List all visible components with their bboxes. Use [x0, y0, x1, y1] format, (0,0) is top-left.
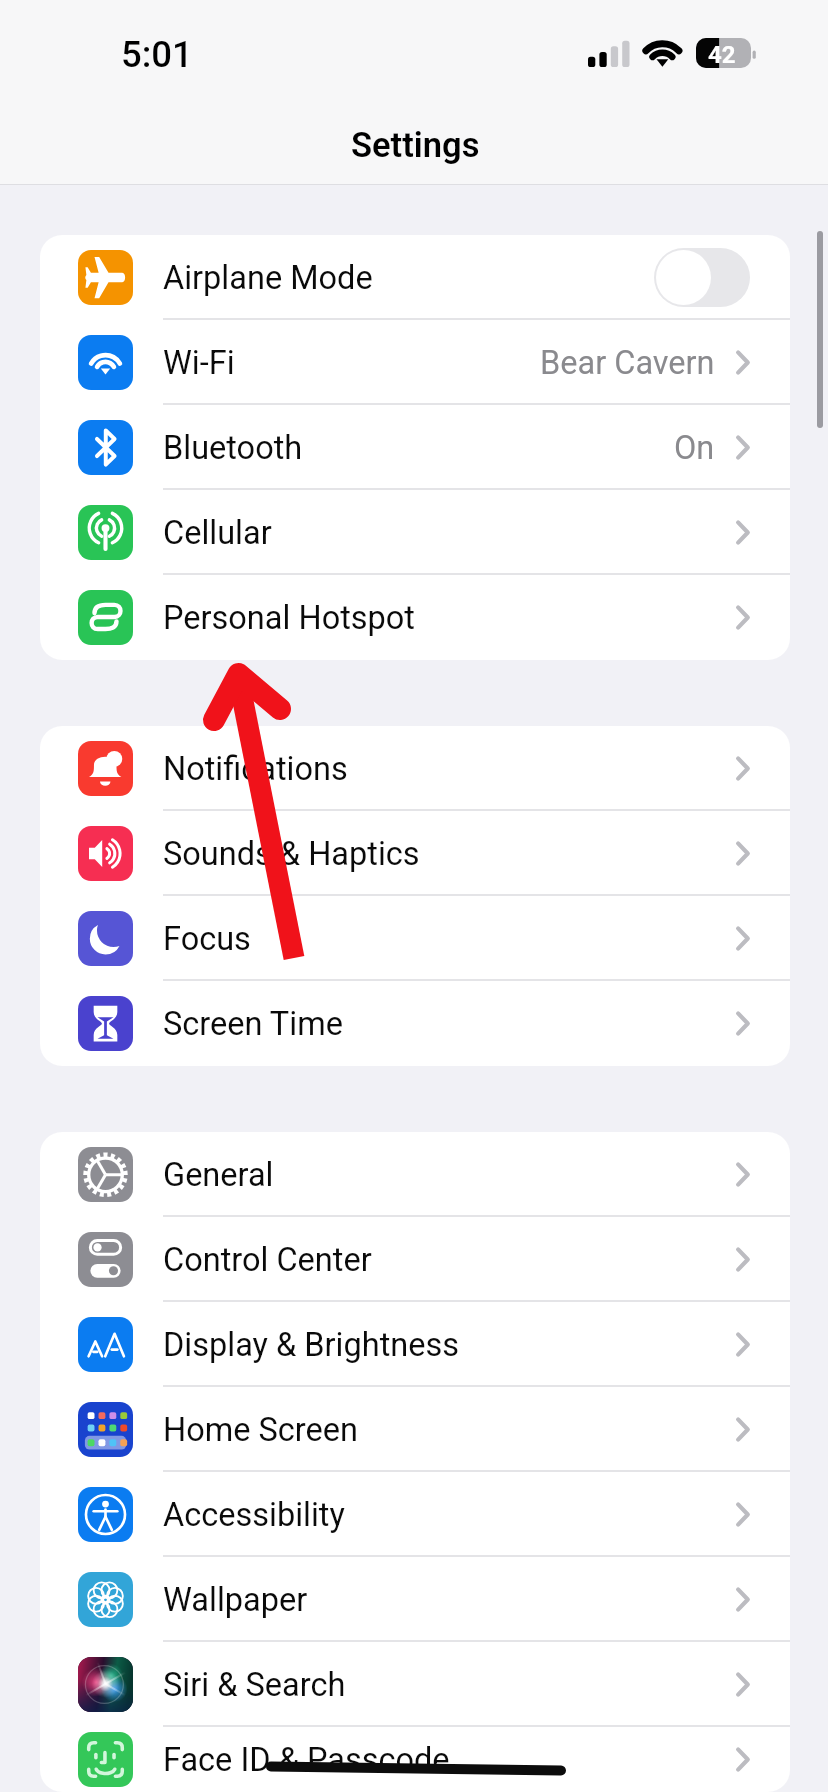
staticText: Bear Cavern — [540, 344, 715, 382]
staticText: Wallpaper — [163, 1581, 308, 1619]
staticText: Cellular — [163, 514, 272, 552]
staticText: General — [163, 1156, 274, 1194]
button[interactable]: Bluetooth — [40, 405, 790, 490]
staticText: Settings — [351, 125, 480, 165]
staticText: On — [674, 429, 715, 467]
staticText: Control Center — [163, 1241, 372, 1279]
button[interactable]: Accessibility — [40, 1472, 790, 1557]
staticText: Focus — [163, 920, 251, 958]
button[interactable]: Toggle Airplane Mode — [654, 248, 750, 307]
button[interactable]: Airplane Mode — [40, 235, 790, 320]
staticText: Home Screen — [163, 1411, 358, 1449]
button[interactable]: Sounds & Haptics — [40, 811, 790, 896]
button[interactable]: Control Center — [40, 1217, 790, 1302]
button[interactable]: Display & Brightness — [40, 1302, 790, 1387]
button[interactable]: Focus — [40, 896, 790, 981]
button[interactable]: Cellular — [40, 490, 790, 575]
staticText: Airplane Mode — [163, 259, 373, 297]
button[interactable]: Face ID & Passcode — [40, 1727, 790, 1792]
button[interactable]: Notifications — [40, 726, 790, 811]
staticText: Notifications — [163, 750, 348, 788]
staticText: Display & Brightness — [163, 1326, 459, 1364]
button[interactable]: Screen Time — [40, 981, 790, 1066]
staticText: 5:01 — [121, 33, 193, 76]
staticText: Bluetooth — [163, 429, 303, 467]
staticText: Accessibility — [163, 1496, 345, 1534]
staticText: Screen Time — [163, 1005, 343, 1043]
staticText: Sounds & Haptics — [163, 835, 420, 873]
staticText: Siri & Search — [163, 1666, 346, 1704]
button[interactable]: General — [40, 1132, 790, 1217]
staticText: 42 — [708, 41, 736, 69]
button[interactable]: Home Screen — [40, 1387, 790, 1472]
button[interactable]: Siri & Search — [40, 1642, 790, 1727]
staticText: Personal Hotspot — [163, 599, 415, 637]
button[interactable]: Wi-Fi — [40, 320, 790, 405]
staticText: Wi-Fi — [163, 344, 235, 382]
button[interactable]: Personal Hotspot — [40, 575, 790, 660]
staticText: Face ID & Passcode — [163, 1741, 450, 1779]
button[interactable]: Wallpaper — [40, 1557, 790, 1642]
